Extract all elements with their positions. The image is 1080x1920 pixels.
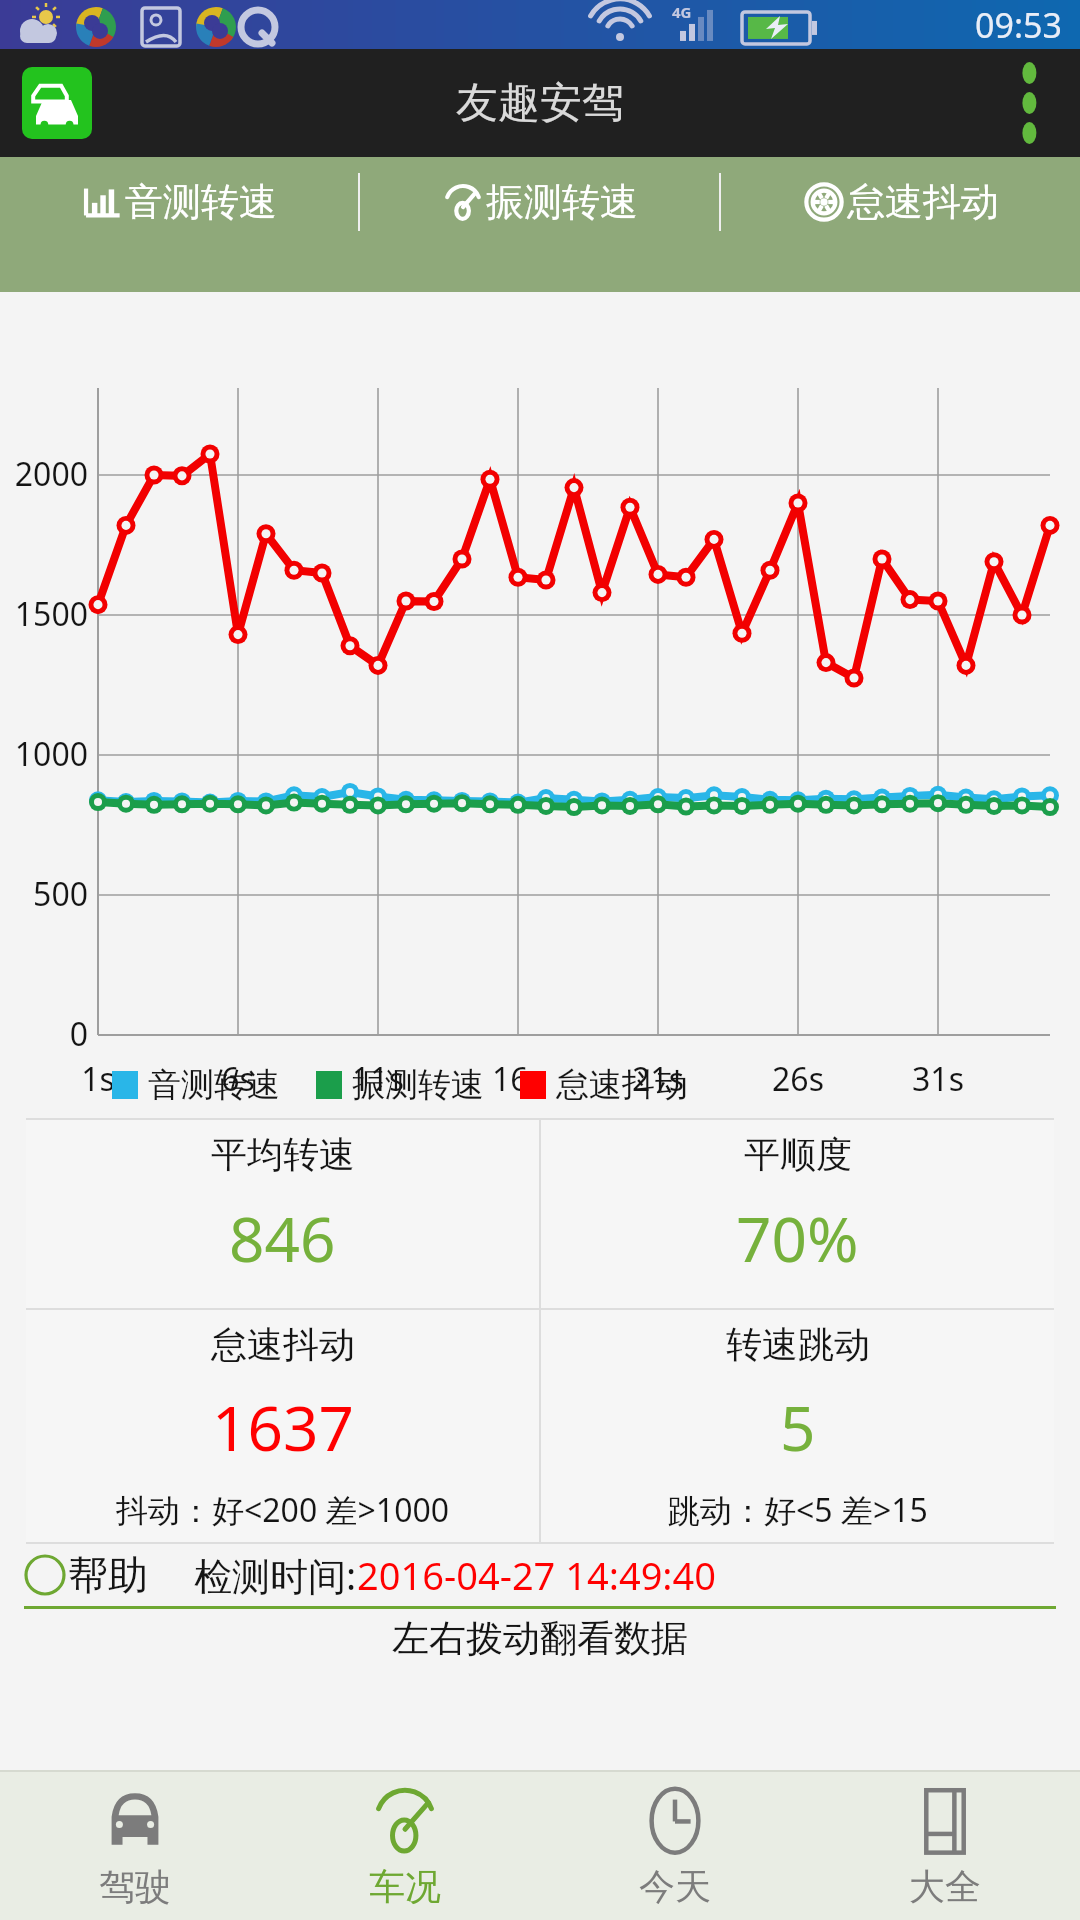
staticText: 振测转速	[352, 1064, 484, 1106]
staticText: 音测转速	[125, 178, 277, 226]
staticText: 跳动：好<5 差>15	[668, 1488, 928, 1532]
button[interactable]: 转速跳动	[541, 1310, 1054, 1542]
button[interactable]: 平均转速	[26, 1120, 539, 1308]
staticText: 31s	[898, 1057, 978, 1101]
staticText: 4G	[672, 2, 692, 22]
staticText: 16s	[478, 1057, 558, 1101]
button[interactable]: 大全	[810, 1772, 1080, 1920]
button[interactable]: More options	[988, 49, 1080, 157]
button[interactable]: 平顺度	[541, 1120, 1054, 1308]
staticText: 1s	[58, 1057, 138, 1101]
staticText: 帮助	[68, 1550, 148, 1600]
staticText: 左右拨动翻看数据	[392, 1615, 688, 1662]
staticText: 26s	[758, 1057, 838, 1101]
staticText: 检测时间:	[194, 1549, 357, 1601]
staticText: 抖动：好<200 差>1000	[116, 1488, 450, 1532]
staticText: 1637	[212, 1385, 354, 1469]
staticText: 500	[0, 872, 88, 916]
staticText: 1000	[0, 732, 88, 776]
staticText: 转速跳动	[726, 1322, 870, 1367]
button[interactable]: 今天	[540, 1772, 810, 1920]
button[interactable]: 车况	[270, 1772, 540, 1920]
staticText: 6s	[198, 1057, 278, 1101]
staticText: 1500	[0, 592, 88, 636]
button[interactable]: 音测转速	[0, 157, 358, 247]
staticText: 2016-04-27 14:49:40	[357, 1549, 717, 1601]
button[interactable]: App icon	[22, 67, 92, 139]
staticText: 平均转速	[211, 1132, 355, 1177]
staticText: 车况	[369, 1864, 441, 1909]
staticText: 怠速抖动	[847, 178, 999, 226]
button[interactable]: 振测转速	[360, 157, 719, 247]
staticText: 70%	[736, 1196, 859, 1280]
staticText: 平顺度	[744, 1132, 852, 1177]
staticText: 09:53	[975, 2, 1062, 48]
staticText: 怠速抖动	[556, 1064, 688, 1106]
staticText: 怠速抖动	[211, 1322, 355, 1367]
staticText: 友趣安驾	[456, 77, 624, 130]
staticText: 音测转速	[148, 1064, 280, 1106]
button[interactable]: 怠速抖动	[26, 1310, 539, 1542]
staticText: 21s	[618, 1057, 698, 1101]
staticText: 2000	[0, 452, 88, 496]
staticText: 振测转速	[486, 178, 638, 226]
staticText: 11s	[338, 1057, 418, 1101]
staticText: 大全	[909, 1864, 981, 1909]
staticText: 驾驶	[99, 1864, 171, 1909]
staticText: 0	[0, 1012, 88, 1056]
button[interactable]: 怠速抖动	[721, 157, 1080, 247]
staticText: 5	[780, 1385, 816, 1469]
button[interactable]: 驾驶	[0, 1772, 270, 1920]
button[interactable]: 帮助	[24, 1550, 148, 1600]
staticText: 846	[229, 1196, 336, 1280]
staticText: 今天	[639, 1864, 711, 1909]
